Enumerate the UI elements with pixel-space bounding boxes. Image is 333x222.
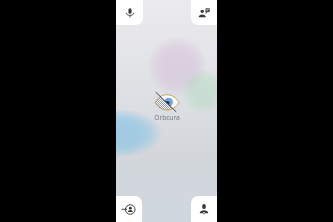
button[interactable]: Sign in [116, 196, 142, 222]
button[interactable]: Messages [191, 0, 217, 25]
button[interactable]: Voice input [116, 0, 143, 25]
button[interactable]: Profile [191, 196, 217, 222]
staticText: Orbcura [154, 113, 180, 122]
